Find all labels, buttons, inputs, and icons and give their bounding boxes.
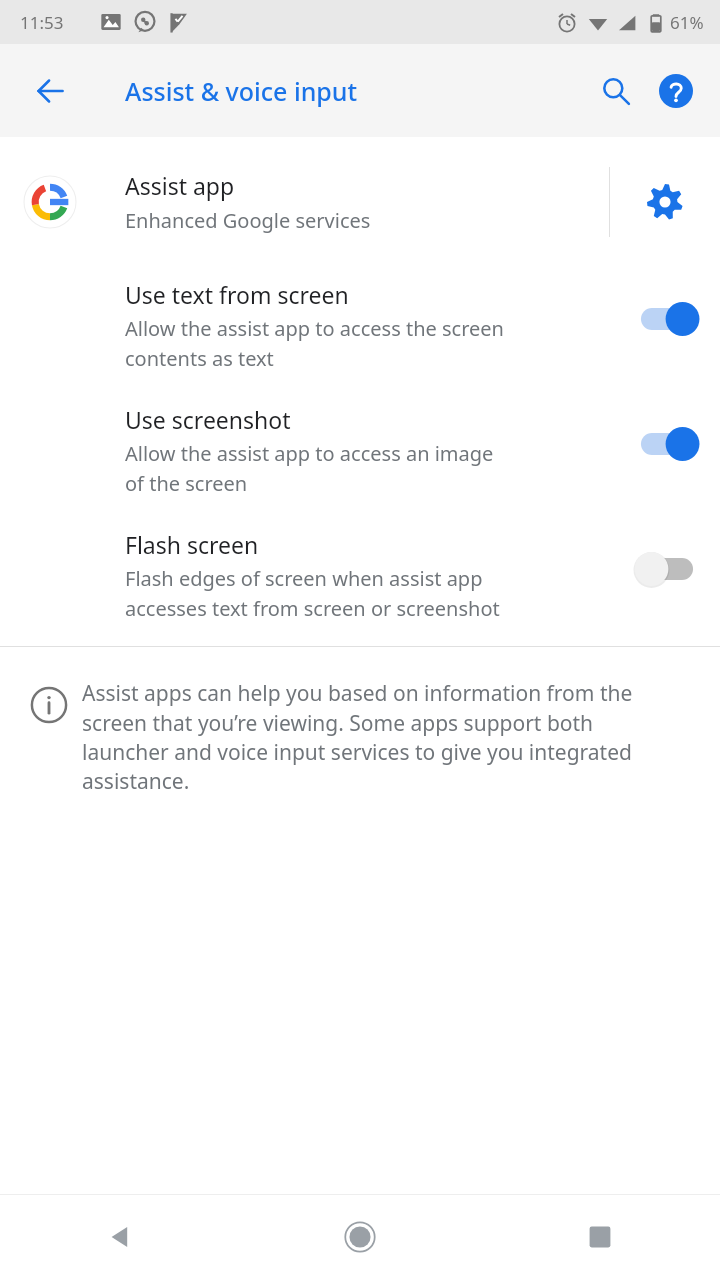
staticText: Use text from screen [125, 279, 349, 310]
button[interactable]: Home [240, 1194, 480, 1280]
staticText: Flash edges of screen when assist app ac… [125, 565, 500, 622]
staticText: Flash screen [125, 529, 259, 560]
button[interactable]: Help [646, 61, 706, 121]
button[interactable]: Use text from screen [636, 297, 698, 341]
button[interactable]: Back [0, 1194, 240, 1280]
staticText: Assist & voice input [125, 74, 358, 108]
button[interactable]: Use screenshot [0, 376, 720, 501]
button[interactable]: Use screenshot [636, 422, 698, 466]
button[interactable]: Recent apps [480, 1194, 720, 1280]
button[interactable]: Flash screen [0, 501, 720, 626]
staticText: 61% [670, 11, 704, 34]
staticText: Allow the assist app to access an image … [125, 440, 494, 497]
staticText: Assist app [125, 170, 235, 201]
staticText: Enhanced Google services [125, 207, 371, 234]
button[interactable]: Assist app settings [610, 147, 720, 257]
staticText: Allow the assist app to access the scree… [125, 315, 504, 372]
button[interactable]: Flash screen [636, 547, 698, 591]
button[interactable]: Back [18, 59, 82, 123]
staticText: 11:53 [20, 11, 64, 34]
button[interactable]: Use text from screen [0, 257, 720, 376]
button[interactable]: Assist app [0, 147, 720, 257]
staticText: Use screenshot [125, 404, 291, 435]
button[interactable]: Search [586, 61, 646, 121]
staticText: Assist apps can help you based on inform… [82, 679, 676, 795]
